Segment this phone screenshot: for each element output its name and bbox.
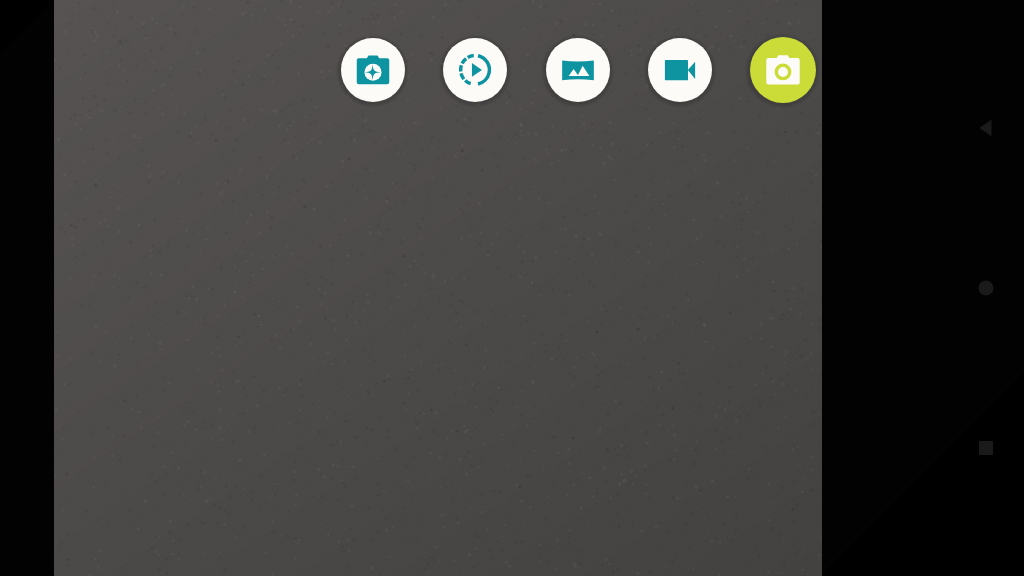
- button[interactable]: Back: [962, 104, 1010, 152]
- button[interactable]: Motion photo mode: [443, 38, 507, 102]
- button[interactable]: Photo enhance mode: [341, 38, 405, 102]
- button[interactable]: Recent apps: [962, 424, 1010, 472]
- button[interactable]: Home: [962, 264, 1010, 312]
- button[interactable]: Take photo: [750, 37, 816, 103]
- button[interactable]: Panorama mode: [546, 38, 610, 102]
- button[interactable]: Video mode: [648, 38, 712, 102]
